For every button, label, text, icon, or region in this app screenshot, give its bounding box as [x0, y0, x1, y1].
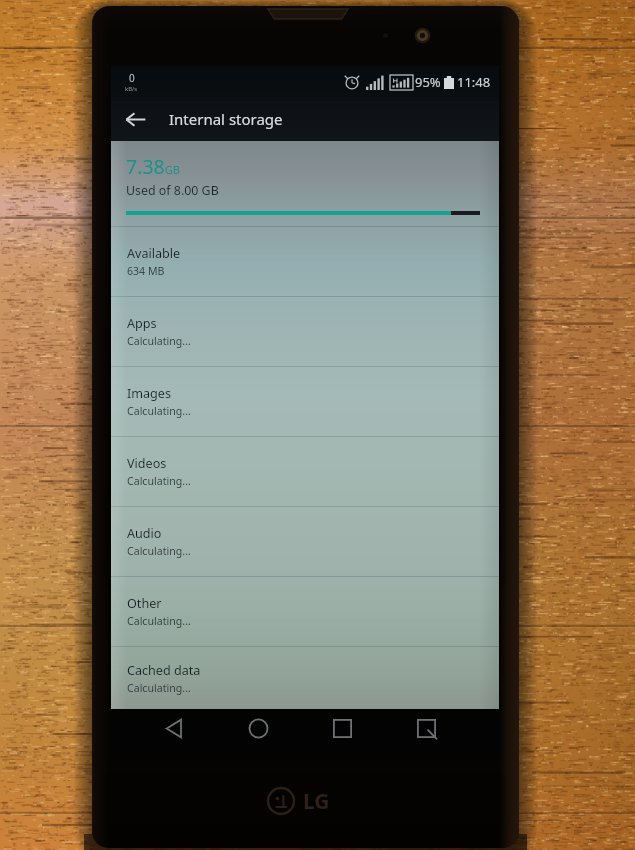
staticText: Apps	[127, 315, 157, 332]
staticText: Calculating...	[127, 544, 191, 558]
staticText: Available	[127, 245, 181, 262]
staticText: Cached data	[127, 662, 201, 679]
staticText: 0	[129, 71, 135, 85]
staticText: Calculating...	[127, 614, 191, 628]
button[interactable]: Navigate up	[113, 97, 157, 141]
staticText: Used of 8.00 GB	[126, 182, 219, 199]
staticText: Audio	[127, 525, 162, 542]
button[interactable]: Cached data	[111, 647, 499, 709]
button[interactable]: Images	[111, 367, 499, 436]
staticText: Internal storage	[169, 109, 283, 129]
staticText: Other	[127, 595, 162, 612]
staticText: Calculating...	[127, 474, 191, 488]
button[interactable]: Available	[111, 227, 499, 296]
staticText: 634 MB	[127, 264, 165, 278]
button[interactable]: Recent apps	[320, 706, 364, 750]
button[interactable]: Apps	[111, 297, 499, 366]
staticText: Calculating...	[127, 334, 191, 348]
staticText: Calculating...	[127, 404, 191, 418]
staticText: 7.38GB	[126, 153, 180, 180]
staticText: Calculating...	[127, 681, 191, 695]
staticText: 95%	[415, 73, 441, 91]
button[interactable]: Home	[236, 706, 280, 750]
button[interactable]: Other	[111, 577, 499, 646]
staticText: 11:48	[457, 73, 491, 91]
staticText: Videos	[127, 455, 167, 472]
button[interactable]: Back	[152, 706, 196, 750]
staticText: Images	[127, 385, 171, 402]
staticText: kB/s	[125, 85, 138, 93]
button[interactable]: Videos	[111, 437, 499, 506]
button[interactable]: Audio	[111, 507, 499, 576]
staticText: LG	[303, 787, 330, 816]
button[interactable]: Capture plus	[404, 706, 448, 750]
